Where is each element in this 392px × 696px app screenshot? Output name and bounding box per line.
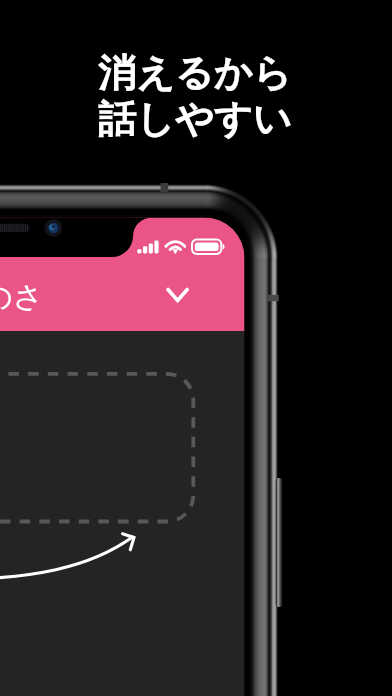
other: App promo screenshot	[0, 0, 392, 696]
